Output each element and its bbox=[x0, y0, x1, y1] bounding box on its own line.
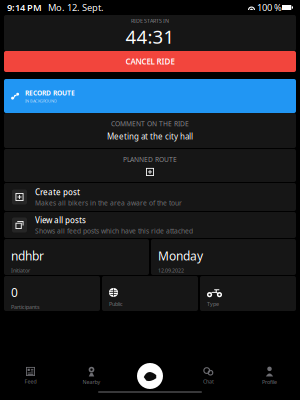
staticText: 9:14 PM bbox=[7, 1, 42, 14]
button[interactable]: Start ride bbox=[137, 363, 163, 389]
staticText: Initiator bbox=[11, 267, 30, 274]
staticText: View all posts bbox=[35, 215, 86, 225]
staticText: Chat bbox=[203, 378, 214, 385]
staticText: Monday bbox=[158, 248, 203, 264]
staticText: Meeting at the city hall bbox=[107, 131, 193, 142]
staticText: Feed bbox=[24, 378, 36, 385]
button[interactable]: Nearby bbox=[61, 364, 122, 388]
button[interactable]: RECORD ROUTE bbox=[4, 79, 296, 113]
staticText: COMMENT ON THE RIDE bbox=[111, 119, 189, 128]
staticText: Participants bbox=[11, 303, 40, 310]
staticText: CANCEL RIDE bbox=[125, 56, 174, 67]
button[interactable]: Feed bbox=[0, 364, 61, 388]
staticText: IN BACKGROUND bbox=[25, 98, 57, 104]
staticText: Nearby bbox=[82, 378, 100, 386]
staticText: Mo. 12. Sept. bbox=[42, 1, 104, 14]
staticText: 0 bbox=[11, 284, 18, 300]
staticText: PLANNED ROUTE bbox=[123, 155, 177, 164]
staticText: 44:31 bbox=[125, 24, 174, 49]
button[interactable]: Chat bbox=[178, 364, 239, 388]
staticText: RIDE STARTS IN bbox=[131, 17, 169, 24]
staticText: 100 % bbox=[255, 1, 282, 14]
button[interactable]: CANCEL RIDE bbox=[4, 51, 296, 72]
staticText: Type bbox=[207, 300, 219, 308]
button[interactable]: View all posts bbox=[4, 212, 296, 238]
staticText: 12.09.2022 bbox=[158, 267, 184, 274]
staticText: Public bbox=[109, 300, 123, 308]
staticText: Profile bbox=[262, 378, 277, 386]
button[interactable]: PLANNED ROUTE bbox=[4, 149, 296, 182]
staticText: ndhbr bbox=[11, 248, 44, 264]
button[interactable]: Create post bbox=[4, 183, 296, 211]
staticText: Makes all bikers in the area aware of th… bbox=[35, 198, 182, 207]
staticText: Shows all feed posts which have this rid… bbox=[35, 226, 193, 235]
staticText: RECORD ROUTE bbox=[25, 88, 75, 97]
button[interactable]: Profile bbox=[239, 364, 300, 388]
staticText: Create post bbox=[35, 187, 80, 197]
